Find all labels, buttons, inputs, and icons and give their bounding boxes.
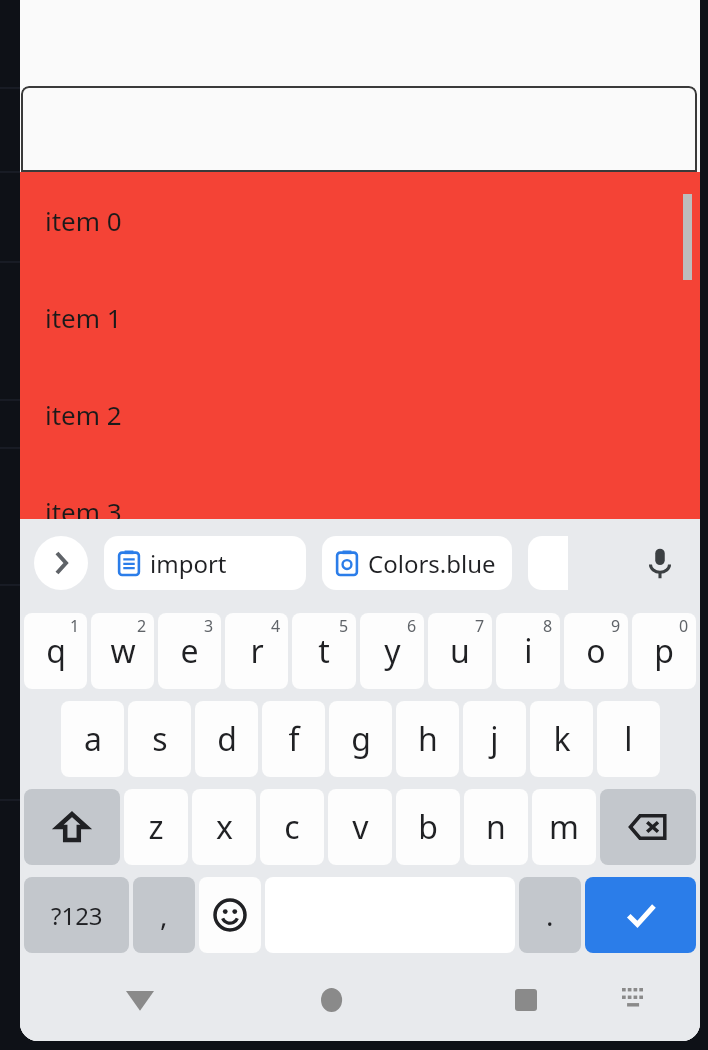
staticText: j <box>490 717 499 761</box>
staticText: w <box>110 629 136 673</box>
button[interactable]: item 0 <box>20 172 700 269</box>
button[interactable]: Enter <box>585 877 696 953</box>
staticText: 7 <box>475 615 485 637</box>
button[interactable]: Home <box>305 972 361 1028</box>
button[interactable]: a <box>61 701 124 777</box>
staticText: f <box>288 717 300 761</box>
button[interactable]: m <box>532 789 596 865</box>
staticText: . <box>546 896 554 934</box>
button[interactable]: s <box>128 701 191 777</box>
button[interactable]: p <box>632 613 696 689</box>
staticText: d <box>217 717 237 761</box>
button[interactable]: Emoji <box>199 877 261 953</box>
staticText: m <box>549 805 579 849</box>
button[interactable]: v <box>328 789 392 865</box>
staticText: item 0 <box>45 203 122 238</box>
staticText: y <box>384 629 401 673</box>
staticText: i <box>524 629 533 673</box>
staticText: e <box>180 629 199 673</box>
staticText: import 'packa… <box>150 547 294 580</box>
staticText: s <box>152 717 168 761</box>
staticText: r <box>250 629 264 673</box>
button[interactable]: j <box>463 701 526 777</box>
button[interactable]: Switch keyboard <box>610 976 658 1024</box>
button[interactable]: k <box>530 701 593 777</box>
button[interactable]: Recents <box>498 972 554 1028</box>
button[interactable]: n <box>464 789 528 865</box>
staticText: u <box>450 629 470 673</box>
button[interactable]: h <box>396 701 459 777</box>
button[interactable]: r <box>225 613 288 689</box>
staticText: a <box>84 717 102 761</box>
staticText: 1 <box>70 615 80 637</box>
staticText: l <box>624 717 633 761</box>
staticText: h <box>418 717 438 761</box>
button[interactable]: c <box>260 789 324 865</box>
staticText: 9 <box>611 615 621 637</box>
button[interactable]: d <box>195 701 258 777</box>
button[interactable]: i <box>496 613 560 689</box>
button[interactable]: o <box>564 613 628 689</box>
staticText: ?123 <box>51 899 103 932</box>
staticText: z <box>148 805 164 849</box>
button[interactable]: l <box>597 701 660 777</box>
staticText: v <box>352 805 369 849</box>
staticText: k <box>553 717 571 761</box>
button[interactable]: q <box>24 613 87 689</box>
staticText: 3 <box>204 615 214 637</box>
staticText: n <box>486 805 506 849</box>
button[interactable] <box>528 536 568 590</box>
staticText: 6 <box>407 615 417 637</box>
staticText: Colors.blue <box>368 547 496 580</box>
staticText: 8 <box>543 615 553 637</box>
staticText: 0 <box>679 615 689 637</box>
button[interactable]: Back <box>112 972 168 1028</box>
button[interactable]: import 'packa… <box>104 536 306 590</box>
button[interactable]: z <box>124 789 188 865</box>
button[interactable]: ?123 <box>24 877 129 953</box>
button[interactable]: item 2 <box>20 366 700 463</box>
button[interactable]: x <box>192 789 256 865</box>
staticText: 2 <box>137 615 147 637</box>
button[interactable]: g <box>329 701 392 777</box>
button[interactable]: Shift <box>24 789 120 865</box>
button[interactable]: . <box>519 877 581 953</box>
staticText: c <box>284 805 300 849</box>
button[interactable]: y <box>360 613 424 689</box>
staticText: item 1 <box>45 300 122 335</box>
staticText: p <box>654 629 674 673</box>
button[interactable]: item 3 <box>20 463 700 560</box>
staticText: 4 <box>271 615 281 637</box>
button[interactable]: , <box>133 877 195 953</box>
button[interactable]: Backspace <box>600 789 696 865</box>
staticText: g <box>351 717 371 761</box>
button[interactable]: Colors.blue <box>322 536 512 590</box>
button[interactable]: t <box>292 613 356 689</box>
button[interactable]: w <box>91 613 154 689</box>
button[interactable]: Expand suggestions <box>34 536 88 590</box>
button[interactable] <box>21 86 697 172</box>
button[interactable]: Voice input <box>634 537 686 589</box>
staticText: item 2 <box>45 397 122 432</box>
button[interactable]: f <box>262 701 325 777</box>
staticText: o <box>586 629 606 673</box>
staticText: b <box>418 805 438 849</box>
staticText: t <box>318 629 330 673</box>
button[interactable]: e <box>158 613 221 689</box>
staticText: item 3 <box>45 494 122 529</box>
button[interactable]: b <box>396 789 460 865</box>
staticText: 5 <box>339 615 349 637</box>
staticText: q <box>46 629 66 673</box>
staticText: , <box>160 896 168 934</box>
button[interactable]: item 1 <box>20 269 700 366</box>
button[interactable]: u <box>428 613 492 689</box>
staticText: x <box>216 805 233 849</box>
